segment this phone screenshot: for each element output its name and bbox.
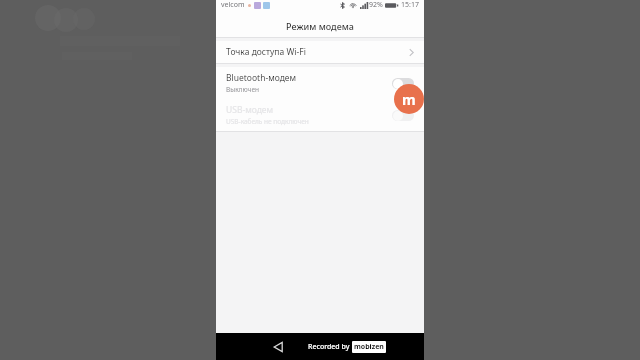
- staticText: m: [402, 90, 416, 109]
- staticText: Выключен: [226, 85, 259, 94]
- staticText: USB-модем: [226, 104, 274, 116]
- button[interactable]: Toggle: [392, 78, 414, 89]
- staticText: velcom: [221, 0, 245, 10]
- button[interactable]: Bluetooth-модем: [216, 67, 424, 99]
- staticText: Recorded by: [308, 342, 352, 352]
- staticText: USB-кабель не подключен: [226, 117, 309, 126]
- staticText: mobizen: [354, 342, 384, 352]
- button[interactable]: Back: [268, 337, 288, 357]
- staticText: Точка доступа Wi-Fi: [226, 46, 306, 58]
- staticText: 15:17: [401, 0, 419, 10]
- button[interactable]: Toggle: [392, 110, 414, 121]
- staticText: Bluetooth-модем: [226, 72, 297, 84]
- button[interactable]: USB-модем: [216, 99, 424, 131]
- staticText: Режим модема: [286, 20, 354, 32]
- staticText: 92%: [369, 0, 383, 10]
- button[interactable]: Точка доступа Wi-Fi: [216, 41, 424, 63]
